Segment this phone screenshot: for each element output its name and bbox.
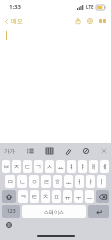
button[interactable]: ㅂ <box>2 160 10 173</box>
staticText: ㄱ <box>35 163 42 171</box>
staticText: ㅑ <box>79 163 86 171</box>
button[interactable]: Shift <box>2 190 16 203</box>
staticText: 123 <box>7 208 16 215</box>
button[interactable]: Close <box>100 147 108 155</box>
staticText: ㄷ <box>24 163 31 171</box>
staticText: ㅅ <box>46 163 53 171</box>
button[interactable]: Table <box>45 147 54 155</box>
staticText: 스페이스 <box>44 209 64 215</box>
button[interactable]: ㅕ <box>67 160 76 173</box>
staticText: ㅕ <box>68 163 75 171</box>
button[interactable]: ㅜ <box>74 190 83 203</box>
button[interactable]: 스페이스 <box>22 205 86 218</box>
staticText: ㅈ <box>13 163 20 171</box>
button[interactable]: ㄷ <box>23 160 32 173</box>
staticText: ㅐ <box>90 163 97 171</box>
button[interactable]: Change keyboard <box>5 221 13 229</box>
staticText: ㅌ <box>31 193 38 201</box>
button[interactable]: ㅇ <box>29 175 39 188</box>
staticText: 가가 <box>4 148 15 155</box>
button[interactable]: ㅣ <box>97 175 106 188</box>
staticText: ㅠ <box>64 193 71 201</box>
staticText: ㅁ <box>7 178 14 186</box>
button[interactable]: 123 <box>2 205 20 218</box>
button[interactable]: Attach <box>64 147 72 156</box>
button[interactable]: ㅁ <box>5 175 15 188</box>
button[interactable]: ㅛ <box>56 160 65 173</box>
staticText: ㅍ <box>53 193 60 201</box>
staticText: ㅓ <box>76 178 83 186</box>
button[interactable]: ㅔ <box>100 160 109 173</box>
button[interactable]: ㅅ <box>45 160 54 173</box>
button[interactable]: ㅍ <box>52 190 61 203</box>
button[interactable]: ㅓ <box>75 175 84 188</box>
button[interactable]: ㅋ <box>18 190 28 203</box>
staticText: ㅎ <box>54 178 61 186</box>
staticText: ㅇ <box>31 178 38 186</box>
button[interactable]: List <box>26 147 35 155</box>
button[interactable]: Backspace <box>96 190 109 203</box>
button[interactable]: ㅎ <box>53 175 62 188</box>
staticText: 메모 <box>11 17 23 25</box>
staticText: ㅜ <box>75 193 82 201</box>
button[interactable]: ㅠ <box>63 190 72 203</box>
button[interactable]: ㅈ <box>12 160 21 173</box>
button[interactable]: ㅑ <box>78 160 87 173</box>
button[interactable]: Markup <box>82 147 90 155</box>
button[interactable]: ㅡ <box>85 190 94 203</box>
button[interactable]: ㅗ <box>64 175 73 188</box>
staticText: ㅛ <box>57 163 64 171</box>
button[interactable]: Compose <box>84 15 96 27</box>
button[interactable]: Share <box>72 15 84 27</box>
staticText: ㄴ <box>19 178 26 186</box>
staticText: ㅏ <box>87 178 94 186</box>
button[interactable]: ㄱ <box>34 160 43 173</box>
button[interactable]: More <box>96 15 111 27</box>
staticText: ㅡ <box>86 193 93 201</box>
staticText: ㅔ <box>101 163 108 171</box>
staticText: ㅊ <box>42 193 49 201</box>
button[interactable]: ㅊ <box>41 190 50 203</box>
button[interactable]: Return <box>88 205 109 218</box>
button[interactable]: 가가 <box>3 147 16 156</box>
staticText: ㅗ <box>65 178 72 186</box>
button[interactable]: ㅐ <box>89 160 98 173</box>
button[interactable]: ㅏ <box>86 175 95 188</box>
staticText: ㅣ <box>98 178 105 186</box>
button[interactable]: 메모 <box>0 15 27 27</box>
staticText: ㅂ <box>3 163 10 171</box>
staticText: ㅋ <box>20 193 27 201</box>
staticText: 1:33 <box>9 3 21 11</box>
button[interactable]: ㄹ <box>41 175 51 188</box>
staticText: ㄹ <box>43 178 50 186</box>
staticText: LTE <box>86 4 94 10</box>
button[interactable]: ㅌ <box>30 190 39 203</box>
button[interactable]: ㄴ <box>17 175 27 188</box>
